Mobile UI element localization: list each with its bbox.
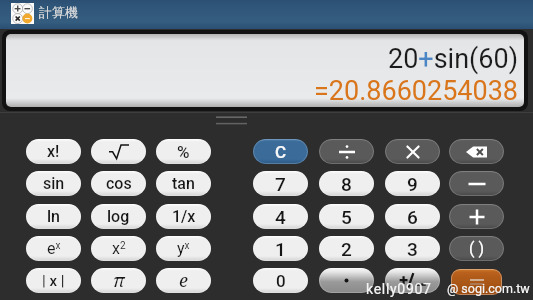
button[interactable]: tan [156, 171, 211, 196]
button[interactable]: Equals [451, 269, 502, 295]
button[interactable]: ln [26, 204, 81, 229]
staticText: C [275, 142, 287, 162]
staticText: ex [47, 239, 61, 258]
staticText: | x | [42, 272, 65, 290]
button[interactable]: 0 [253, 268, 308, 293]
button[interactable]: Calculator [11, 3, 34, 24]
button[interactable]: 7 [253, 171, 308, 196]
button[interactable]: Square root [91, 139, 146, 164]
staticText: e [179, 268, 188, 293]
button[interactable]: C [253, 139, 308, 164]
button[interactable]: | x | [26, 268, 81, 293]
staticText: 2 [341, 238, 352, 260]
staticText: yx [177, 239, 190, 258]
button[interactable]: cos [91, 171, 146, 196]
button[interactable]: 6 [385, 204, 440, 229]
staticText: 4 [275, 206, 286, 228]
staticText: 計算機 [39, 4, 78, 20]
button[interactable]: % [156, 139, 211, 164]
staticText: 7 [275, 173, 286, 195]
staticText: 8 [341, 173, 352, 195]
button[interactable]: ex [26, 236, 81, 261]
staticText: sin [43, 174, 65, 193]
staticText: ln [47, 207, 60, 226]
button[interactable]: Plus [449, 204, 504, 229]
staticText: 9 [407, 173, 418, 195]
staticText: cos [106, 174, 132, 193]
button[interactable]: sin [26, 171, 81, 196]
button[interactable]: 2 [319, 236, 374, 261]
staticText: 1/x [172, 207, 196, 226]
button[interactable]: x2 [91, 236, 146, 261]
staticText: 3 [407, 238, 418, 260]
staticText: π [113, 268, 125, 293]
button[interactable]: yx [156, 236, 211, 261]
button[interactable]: Minus [449, 171, 504, 196]
button[interactable]: 5 [319, 204, 374, 229]
button[interactable]: 1/x [156, 204, 211, 229]
button[interactable]: x! [26, 139, 81, 164]
button[interactable]: 8 [319, 171, 374, 196]
button[interactable]: Parentheses [449, 236, 504, 261]
staticText: 5 [341, 206, 352, 228]
staticText: x! [47, 142, 60, 161]
staticText: % [177, 142, 190, 162]
staticText: tan [172, 174, 195, 193]
button[interactable]: Multiply [385, 139, 440, 164]
staticText: 20+sin(60) [388, 43, 519, 75]
button[interactable]: e [156, 268, 211, 293]
staticText: x2 [112, 239, 126, 258]
staticText: 0 [276, 271, 286, 291]
staticText: 1 [275, 238, 286, 260]
staticText: ( ) [469, 239, 485, 258]
button[interactable]: Delete [449, 139, 504, 164]
button[interactable]: Plus minus sign [385, 268, 440, 293]
button[interactable]: Divide [319, 139, 374, 164]
button[interactable]: 9 [385, 171, 440, 196]
button[interactable]: 4 [253, 204, 308, 229]
button[interactable]: 1 [253, 236, 308, 261]
button[interactable]: 3 [385, 236, 440, 261]
button[interactable]: log [91, 204, 146, 229]
staticText: kelly0907 [366, 281, 432, 297]
staticText: 6 [407, 206, 418, 228]
button[interactable]: Decimal point [319, 268, 374, 293]
staticText: @ sogi.com.tw [447, 281, 530, 296]
staticText: =20.8660254038 [314, 75, 519, 107]
staticText: log [107, 207, 130, 226]
button[interactable]: π [91, 268, 146, 293]
